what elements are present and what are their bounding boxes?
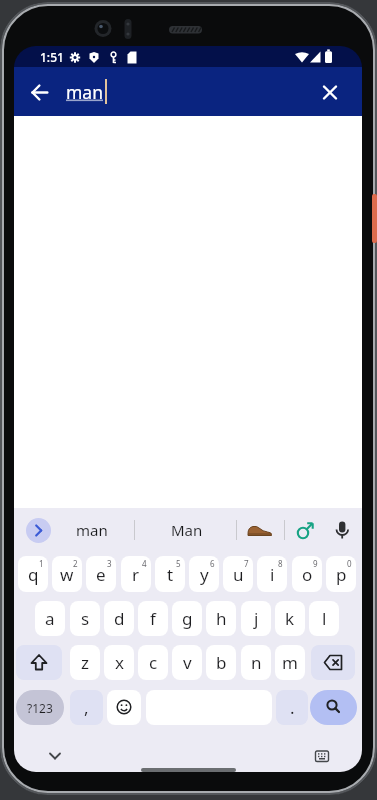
staticText: v <box>183 651 192 674</box>
staticText: l <box>322 607 327 630</box>
button[interactable]: man <box>62 514 122 546</box>
button[interactable] <box>40 744 70 770</box>
button[interactable]: v <box>172 645 202 680</box>
staticText: s <box>81 607 90 630</box>
button[interactable] <box>16 645 62 680</box>
staticText: z <box>81 651 89 674</box>
button[interactable]: man <box>66 80 103 104</box>
staticText: q <box>28 563 39 586</box>
staticText: 9 <box>313 558 318 569</box>
staticText: man <box>76 520 108 540</box>
button[interactable]: z <box>70 645 100 680</box>
button[interactable]: j <box>241 601 271 636</box>
staticText: d <box>114 607 125 630</box>
button[interactable]: s <box>70 601 100 636</box>
button[interactable]: w <box>52 556 82 592</box>
button[interactable]: x <box>104 645 134 680</box>
staticText: 5 <box>176 558 181 569</box>
button[interactable] <box>16 68 64 116</box>
staticText: x <box>115 651 124 674</box>
button[interactable] <box>246 516 274 544</box>
button[interactable] <box>311 645 355 680</box>
button[interactable]: c <box>138 645 168 680</box>
button[interactable]: m <box>275 645 305 680</box>
button[interactable]: d <box>104 601 134 636</box>
staticText: j <box>254 607 259 630</box>
staticText: c <box>149 651 158 674</box>
staticText: 3 <box>107 558 112 569</box>
staticText: m <box>282 651 298 674</box>
button[interactable]: y <box>189 556 219 592</box>
button[interactable] <box>310 690 357 725</box>
staticText: 4 <box>142 558 147 569</box>
button[interactable]: e <box>86 556 116 592</box>
staticText: 1 <box>39 558 44 569</box>
button[interactable]: , <box>70 690 103 725</box>
staticText: . <box>290 696 295 719</box>
staticText: p <box>336 563 347 586</box>
button[interactable]: q <box>18 556 48 592</box>
button[interactable]: g <box>172 601 202 636</box>
staticText: u <box>233 563 244 586</box>
button[interactable]: f <box>138 601 168 636</box>
button[interactable]: Man <box>157 514 217 546</box>
button[interactable]: u <box>223 556 253 592</box>
staticText: n <box>251 651 262 674</box>
button[interactable] <box>307 744 337 770</box>
staticText: g <box>182 607 193 630</box>
staticText: f <box>150 607 156 630</box>
button[interactable] <box>107 690 141 725</box>
staticText: i <box>270 563 275 586</box>
button[interactable]: n <box>241 645 271 680</box>
staticText: 8 <box>278 558 283 569</box>
button[interactable]: l <box>309 601 339 636</box>
button[interactable]: k <box>275 601 305 636</box>
button[interactable]: p <box>326 556 356 592</box>
staticText: r <box>132 563 140 586</box>
staticText: a <box>45 607 55 630</box>
staticText: y <box>200 563 209 586</box>
staticText: k <box>285 607 295 630</box>
button[interactable] <box>306 68 354 116</box>
staticText: ?123 <box>27 700 53 716</box>
staticText: h <box>216 607 227 630</box>
staticText: o <box>302 563 313 586</box>
staticText: Man <box>171 520 203 540</box>
staticText: t <box>167 563 174 586</box>
button[interactable]: t <box>155 556 185 592</box>
button[interactable] <box>328 516 356 544</box>
staticText: e <box>96 563 106 586</box>
staticText: , <box>84 696 89 719</box>
staticText: w <box>60 563 74 586</box>
button[interactable]: i <box>257 556 287 592</box>
button[interactable] <box>292 516 320 544</box>
staticText: 2 <box>73 558 78 569</box>
button[interactable]: . <box>276 690 308 725</box>
staticText: b <box>216 651 227 674</box>
button[interactable] <box>26 518 51 543</box>
staticText: 1:51 <box>40 49 64 65</box>
button[interactable]: o <box>292 556 322 592</box>
button[interactable]: a <box>35 601 65 636</box>
button[interactable]: h <box>206 601 236 636</box>
staticText: 0 <box>347 558 352 569</box>
staticText: 6 <box>210 558 215 569</box>
button[interactable]: r <box>121 556 151 592</box>
button[interactable]: ?123 <box>16 690 64 725</box>
staticText: 7 <box>244 558 249 569</box>
button[interactable]: b <box>206 645 236 680</box>
